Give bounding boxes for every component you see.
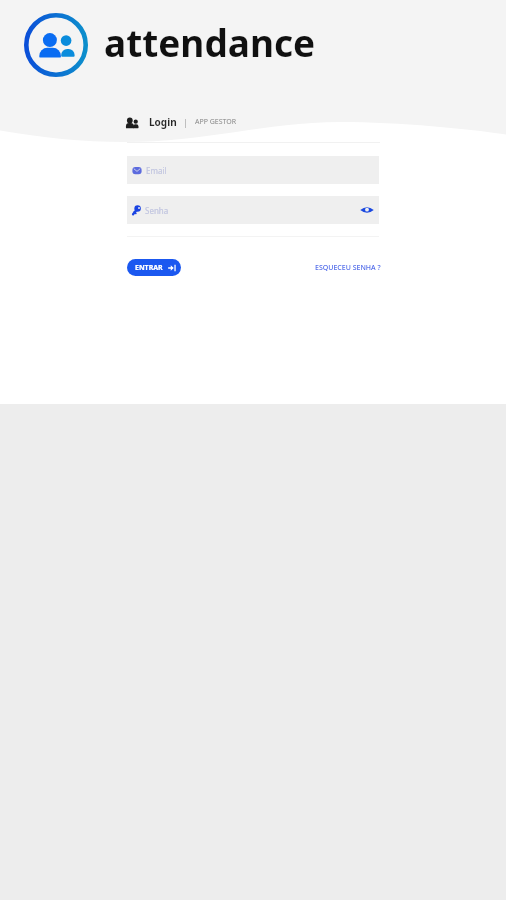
button[interactable]: ENTRAR [127,259,181,276]
staticText: ENTRAR [135,263,163,273]
staticText: APP GESTOR [195,117,237,127]
staticText: ESQUECEU SENHA ? [315,263,381,273]
button[interactable]: Senha [127,196,379,224]
button[interactable]: Mostrar senha [356,199,378,221]
button[interactable]: Login [122,112,237,132]
staticText: Senha [145,205,169,216]
staticText: Email [146,165,167,176]
button[interactable]: Email [127,156,379,184]
staticText: | [183,116,188,128]
button[interactable]: ESQUECEU SENHA ? [315,259,381,276]
staticText: attendance [104,17,316,67]
staticText: Login [149,115,177,129]
